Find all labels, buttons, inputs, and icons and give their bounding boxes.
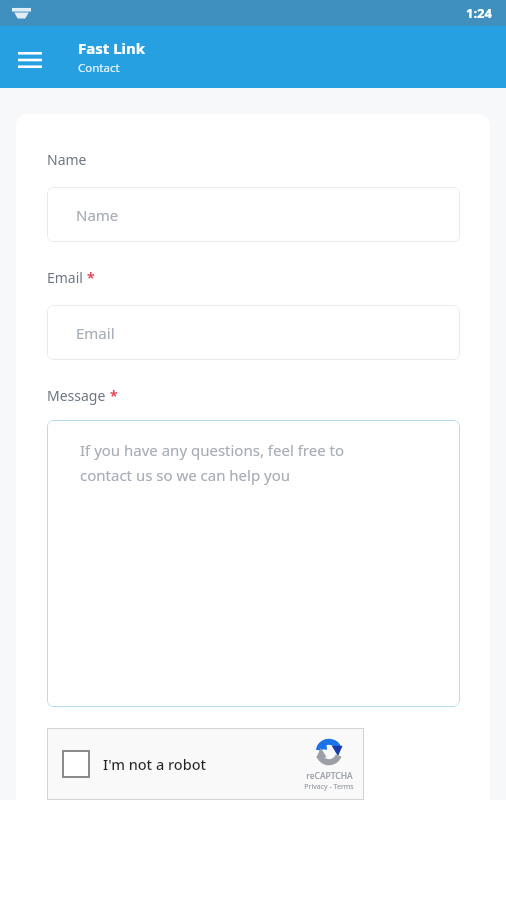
button[interactable]: Open navigation menu — [10, 40, 50, 80]
staticText: Fast Link — [78, 38, 146, 58]
staticText: Email — [47, 268, 83, 287]
staticText: Name — [76, 205, 119, 225]
staticText: Privacy - Terms — [304, 782, 354, 792]
staticText: 1:24 — [466, 4, 492, 22]
staticText: If you have any questions, feel free to … — [80, 440, 345, 485]
button[interactable]: Email — [47, 305, 460, 360]
staticText: reCAPTCHA — [306, 770, 353, 782]
staticText: Message — [47, 386, 106, 405]
staticText: Contact — [78, 60, 120, 76]
staticText: Name — [47, 150, 87, 169]
staticText: * — [87, 268, 95, 287]
button[interactable]: If you have any questions, feel free to … — [47, 420, 460, 707]
staticText: Email — [76, 323, 115, 343]
button[interactable]: I'm not a robot checkbox — [47, 728, 364, 800]
staticText: I'm not a robot — [103, 754, 207, 774]
button[interactable]: Name — [47, 187, 460, 242]
staticText: * — [110, 386, 118, 405]
button[interactable]: I'm not a robot checkbox — [62, 750, 90, 778]
